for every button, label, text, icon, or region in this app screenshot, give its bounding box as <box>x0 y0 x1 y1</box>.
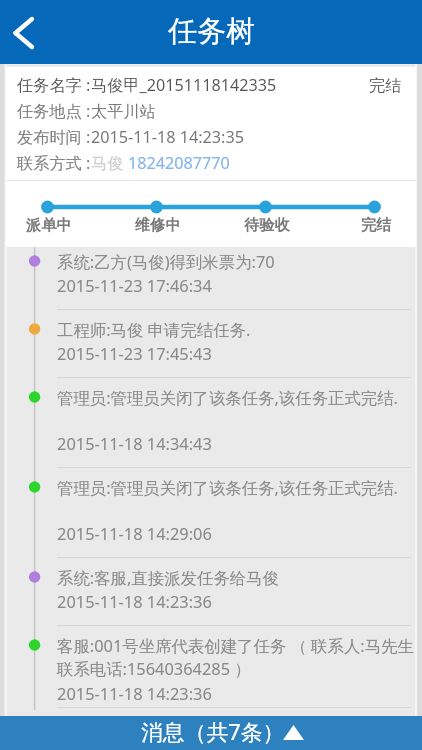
button[interactable]: 管理员:管理员关闭了该条任务,该任务正式完结. <box>0 468 422 558</box>
staticText: 2015-11-23 17:45:43 <box>57 342 212 364</box>
button[interactable]: 客服:001号坐席代表创建了任务 （ 联系人:马先生 联系电话:15640364… <box>0 626 422 708</box>
button[interactable]: 工程师:马俊 申请完结任务. <box>0 310 422 378</box>
button[interactable]: Back <box>0 0 50 64</box>
staticText: 任务地点 : <box>17 100 91 122</box>
staticText: 2015-11-18 14:29:06 <box>57 522 212 544</box>
staticText: 太平川站 <box>91 101 156 121</box>
staticText: 完结 <box>361 215 392 234</box>
staticText: 系统:乙方(马俊)得到米票为:70 <box>57 250 275 272</box>
staticText: 管理员:管理员关闭了该条任务,该任务正式完结. <box>57 476 398 498</box>
button[interactable]: 消息（共7条） <box>0 716 422 750</box>
staticText: 2015-11-18 14:23:36 <box>57 590 212 612</box>
staticText: 18242087770 <box>128 152 230 174</box>
staticText: 任务名字 : <box>17 74 91 96</box>
staticText: 消息（共7条） <box>141 717 285 747</box>
staticText: 2015-11-23 17:46:34 <box>57 274 212 296</box>
staticText: 待验收 <box>244 215 290 234</box>
button[interactable]: 管理员:管理员关闭了该条任务,该任务正式完结. <box>0 378 422 468</box>
staticText: 联系方式 : <box>17 152 91 174</box>
staticText: 维修中 <box>135 215 181 234</box>
staticText: 2015-11-18 14:34:43 <box>57 432 212 454</box>
staticText: 客服:001号坐席代表创建了任务 （ 联系人:马先生 联系电话:15640364… <box>57 634 414 680</box>
staticText: 系统:客服,直接派发任务给马俊 <box>57 566 279 588</box>
staticText: 发布时间 : <box>17 126 91 148</box>
staticText: 派单中 <box>26 215 72 234</box>
staticText: 马俊甲_20151118142335 <box>91 74 277 96</box>
staticText: 2015-11-18 14:23:35 <box>91 126 244 148</box>
staticText: 工程师:马俊 申请完结任务. <box>57 318 251 340</box>
staticText: 任务树 <box>168 13 255 50</box>
staticText: 2015-11-18 14:23:36 <box>57 682 212 704</box>
staticText: 管理员:管理员关闭了该条任务,该任务正式完结. <box>57 386 398 408</box>
button[interactable]: 系统:客服,直接派发任务给马俊 <box>0 558 422 626</box>
button[interactable]: 系统:乙方(马俊)得到米票为:70 <box>0 247 422 310</box>
staticText: 完结 <box>369 75 402 95</box>
staticText: 马俊 <box>91 152 128 174</box>
